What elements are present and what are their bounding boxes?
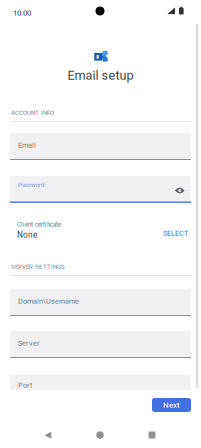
button[interactable]: Next	[152, 398, 191, 412]
staticText: SERVER SETTINGS	[11, 263, 65, 270]
button[interactable]: Client certificate	[0, 219, 201, 247]
button[interactable]: Domain\Username	[10, 289, 191, 316]
staticText: Next	[163, 400, 180, 410]
staticText: ACCOUNT INFO	[11, 109, 54, 116]
staticText: Email setup	[67, 68, 133, 83]
button[interactable]: Recent apps	[144, 427, 160, 443]
staticText: Email	[18, 141, 36, 150]
button[interactable]: Back	[40, 427, 56, 443]
button[interactable]: Server	[10, 331, 191, 358]
staticText: Domain\Username	[18, 297, 79, 306]
staticText: Client certificate	[17, 221, 61, 228]
button[interactable]: Password	[10, 176, 191, 203]
button[interactable]: Home	[92, 427, 108, 443]
staticText: 10:00	[13, 8, 31, 17]
button[interactable]: Email	[10, 133, 191, 160]
staticText: SELECT	[163, 229, 188, 237]
staticText: Password	[18, 181, 44, 188]
staticText: Server	[18, 339, 39, 348]
staticText: None	[17, 230, 37, 240]
staticText: Port	[18, 381, 32, 390]
